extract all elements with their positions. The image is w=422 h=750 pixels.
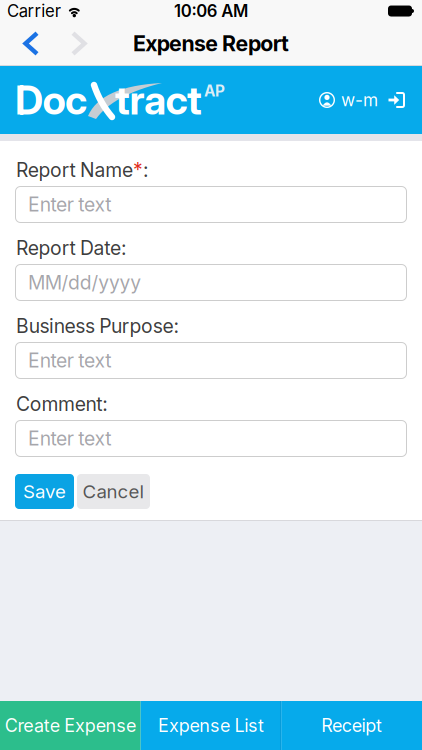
button[interactable]: Expense List (141, 701, 281, 750)
staticText: Expense Report (133, 31, 289, 56)
button[interactable] (378, 92, 422, 108)
staticText: : (143, 158, 149, 182)
staticText: : (121, 236, 127, 260)
button[interactable]: Create Expense (0, 701, 141, 750)
staticText: Business Purpose (16, 314, 173, 338)
button[interactable]: Save (15, 474, 74, 509)
button[interactable]: MM/dd/yyyy (15, 264, 407, 301)
staticText: Enter text (28, 349, 111, 372)
staticText: Enter text (28, 193, 111, 216)
staticText: Carrier (7, 1, 61, 21)
staticText: 10:06 AM (174, 1, 248, 21)
button[interactable] (71, 32, 87, 55)
staticText: MM/dd/yyyy (28, 271, 141, 294)
staticText: Report Date (16, 236, 121, 260)
staticText: Expense List (158, 715, 264, 736)
staticText: Save (23, 480, 66, 503)
staticText: tract (115, 76, 202, 124)
staticText: * (133, 158, 143, 182)
button[interactable]: Receipt (281, 701, 422, 750)
staticText: Receipt (321, 715, 382, 736)
button[interactable]: Enter text (15, 186, 407, 223)
staticText: : (173, 314, 179, 338)
button[interactable] (23, 32, 39, 55)
staticText: Report Name (16, 158, 133, 182)
staticText: Cancel (82, 480, 144, 503)
button[interactable]: Cancel (77, 474, 150, 509)
staticText: Comment (16, 392, 102, 416)
button[interactable]: w-m (319, 89, 378, 110)
button[interactable]: Enter text (15, 342, 407, 379)
button[interactable]: Enter text (15, 420, 407, 457)
staticText: Enter text (28, 427, 111, 450)
staticText: w-m (341, 89, 378, 110)
staticText: Doc (15, 76, 87, 124)
staticText: AP (204, 82, 225, 100)
staticText: Create Expense (5, 715, 136, 736)
staticText: : (102, 392, 108, 416)
